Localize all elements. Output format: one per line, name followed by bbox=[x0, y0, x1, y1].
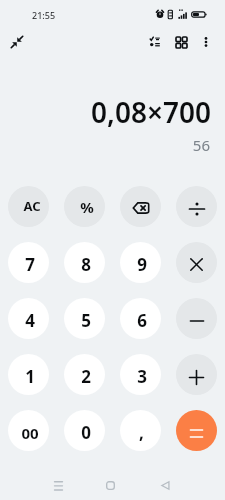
staticText: 7 bbox=[25, 253, 35, 276]
button[interactable]: Unit converter bbox=[141, 28, 169, 56]
button[interactable]: Multiply bbox=[176, 242, 217, 283]
button[interactable]: Collapse bbox=[3, 28, 31, 56]
button[interactable]: 5 bbox=[64, 298, 105, 339]
button[interactable]: AC bbox=[8, 186, 49, 227]
staticText: 00 bbox=[21, 423, 39, 443]
button[interactable]: Back bbox=[149, 469, 182, 500]
staticText: 8 bbox=[81, 253, 91, 276]
button[interactable]: 00 bbox=[8, 410, 49, 451]
staticText: AC bbox=[23, 197, 41, 215]
staticText: 21:55 bbox=[32, 9, 56, 21]
staticText: 0 bbox=[81, 421, 91, 444]
button[interactable]: Backspace bbox=[120, 186, 161, 227]
button[interactable]: Apps bbox=[167, 28, 195, 56]
button[interactable]: 2 bbox=[64, 354, 105, 395]
button[interactable]: More options bbox=[192, 28, 220, 56]
button[interactable]: , bbox=[120, 410, 161, 451]
button[interactable]: Recents bbox=[42, 469, 75, 500]
staticText: , bbox=[139, 421, 144, 444]
button[interactable]: 9 bbox=[120, 242, 161, 283]
staticText: 56 bbox=[0, 135, 210, 155]
staticText: 3 bbox=[137, 365, 147, 388]
button[interactable]: 7 bbox=[8, 242, 49, 283]
staticText: % bbox=[80, 197, 94, 217]
staticText: 4 bbox=[25, 309, 35, 332]
button[interactable]: Minus bbox=[176, 298, 217, 339]
button[interactable]: Plus bbox=[176, 354, 217, 395]
button[interactable]: 4 bbox=[8, 298, 49, 339]
button[interactable]: Home bbox=[94, 469, 127, 500]
button[interactable]: 0 bbox=[64, 410, 105, 451]
staticText: 2 bbox=[81, 365, 91, 388]
button[interactable]: % bbox=[64, 186, 105, 227]
button[interactable]: Divide bbox=[176, 186, 217, 227]
button[interactable]: 1 bbox=[8, 354, 49, 395]
staticText: 5 bbox=[81, 309, 91, 332]
button[interactable]: 8 bbox=[64, 242, 105, 283]
button[interactable]: Equals bbox=[176, 410, 217, 451]
staticText: 6 bbox=[137, 309, 147, 332]
button[interactable]: 6 bbox=[120, 298, 161, 339]
button[interactable]: 3 bbox=[120, 354, 161, 395]
staticText: 0,08×700 bbox=[0, 93, 211, 131]
staticText: 1 bbox=[25, 365, 35, 388]
staticText: 9 bbox=[137, 253, 147, 276]
